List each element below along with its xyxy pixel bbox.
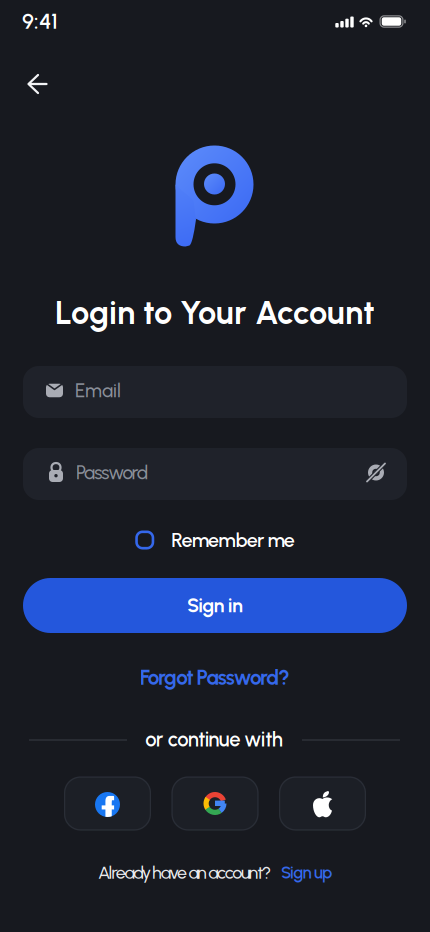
staticText: or continue with [145,727,283,752]
button[interactable] [64,776,151,830]
staticText: Sign up [281,862,332,883]
button[interactable]: Remember me [135,528,295,552]
staticText: Remember me [171,528,295,552]
button[interactable] [279,776,366,830]
button[interactable]: Sign in [23,578,407,633]
button[interactable]: Sign up [281,862,332,883]
button[interactable] [171,776,258,830]
staticText: Forgot Password? [140,665,290,690]
staticText: Already have an account? [98,862,271,883]
staticText: Login to Your Account [55,293,375,332]
staticText: 9:41 [22,8,58,34]
button[interactable] [18,65,56,103]
button[interactable]: Password [23,448,407,500]
button[interactable]: Email [23,366,407,418]
staticText: Sign in [187,594,243,617]
staticText: Email [75,379,121,402]
button[interactable]: Forgot Password? [134,659,296,696]
staticText: Password [76,461,148,484]
